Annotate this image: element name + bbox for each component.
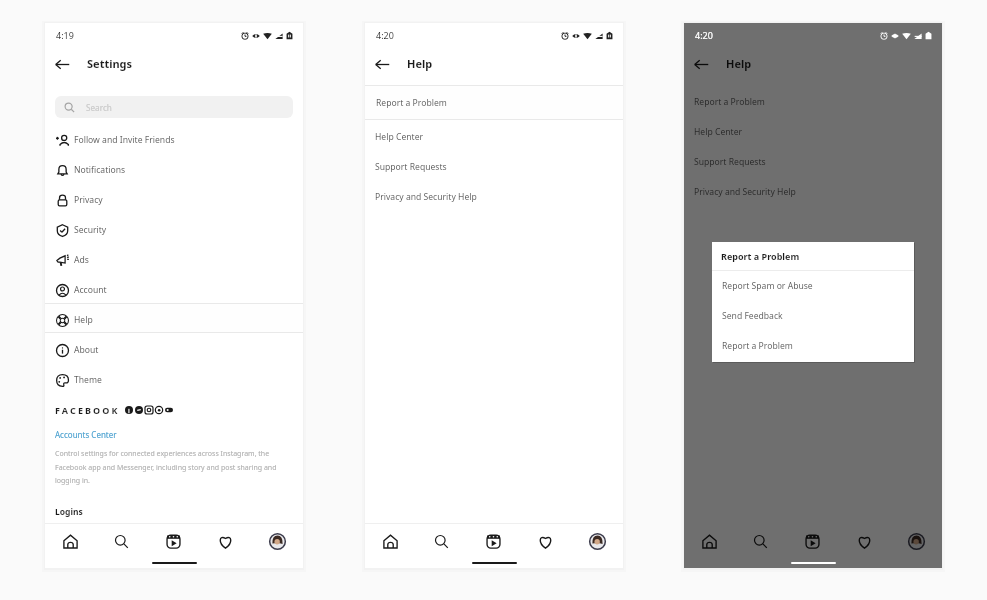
staticText: Send Feedback [722, 310, 783, 322]
staticText: Accounts Center [55, 429, 117, 440]
staticText: Privacy and Security Help [375, 191, 477, 203]
button[interactable]: Profile [890, 529, 942, 553]
button[interactable]: Report Spam or Abuse [712, 271, 914, 301]
button[interactable]: Report a Problem [365, 85, 623, 120]
button[interactable]: Privacy and Security Help [365, 182, 623, 212]
button[interactable]: Reels [147, 529, 199, 553]
button[interactable]: Reels [786, 529, 838, 553]
staticText: Report a Problem [722, 340, 793, 352]
button[interactable]: Search [55, 96, 293, 118]
staticText: Support Requests [375, 161, 447, 173]
button[interactable]: Help Center [365, 122, 623, 152]
button[interactable]: Ads [45, 245, 303, 275]
button[interactable]: Back [371, 53, 393, 75]
staticText: Report a Problem [721, 250, 800, 262]
staticText: FACEBOOK [55, 404, 120, 416]
button[interactable]: About [45, 335, 303, 365]
button[interactable]: Privacy [45, 185, 303, 215]
staticText: Help Center [375, 131, 424, 143]
button[interactable]: Send Feedback [712, 301, 914, 331]
staticText: 4:20 [376, 29, 394, 41]
staticText: Follow and Invite Friends [74, 134, 175, 146]
staticText: Security [74, 224, 107, 236]
button[interactable]: Notifications [45, 155, 303, 185]
button[interactable]: Profile [251, 529, 303, 553]
button[interactable]: Privacy and Security Help [684, 177, 942, 207]
staticText: Help [407, 56, 433, 71]
staticText: Privacy [74, 194, 103, 206]
staticText: Logins [55, 506, 83, 518]
staticText: Theme [74, 374, 102, 386]
button[interactable]: Help [45, 305, 303, 335]
button[interactable]: Search [735, 529, 786, 553]
staticText: Settings [87, 56, 133, 71]
button[interactable]: Home [45, 529, 96, 553]
button[interactable]: Support Requests [684, 147, 942, 177]
staticText: Report a Problem [376, 97, 447, 109]
button[interactable]: Home [684, 529, 735, 553]
button[interactable]: Follow and Invite Friends [45, 125, 303, 155]
staticText: Report a Problem [694, 96, 765, 108]
button[interactable]: Support Requests [365, 152, 623, 182]
button[interactable]: Security [45, 215, 303, 245]
button[interactable]: Search [416, 529, 467, 553]
button[interactable]: Logins [55, 506, 83, 518]
staticText: Help [74, 314, 93, 326]
button[interactable]: Report a Problem [712, 331, 914, 361]
staticText: Help Center [694, 126, 743, 138]
button[interactable]: Back [51, 53, 73, 75]
button[interactable]: Likes [838, 529, 890, 553]
staticText: Support Requests [694, 156, 766, 168]
staticText: Notifications [74, 164, 126, 176]
button[interactable]: Back [690, 53, 712, 75]
staticText: Privacy and Security Help [694, 186, 796, 198]
button[interactable]: Likes [519, 529, 571, 553]
button[interactable]: Profile [571, 529, 623, 553]
staticText: Search [86, 102, 112, 113]
staticText: Ads [74, 254, 89, 266]
button[interactable]: Theme [45, 365, 303, 395]
button[interactable]: Reels [467, 529, 519, 553]
button[interactable]: Help Center [684, 117, 942, 147]
button[interactable]: Accounts Center [55, 429, 117, 440]
staticText: About [74, 344, 99, 356]
button[interactable]: Report a Problem [684, 87, 942, 117]
staticText: Account [74, 284, 107, 296]
staticText: 4:19 [56, 29, 74, 41]
staticText: 4:20 [695, 29, 713, 41]
button[interactable]: Account [45, 275, 303, 305]
staticText: Control settings for connected experienc… [55, 449, 290, 485]
button[interactable]: Search [96, 529, 147, 553]
staticText: Help [726, 56, 752, 71]
button[interactable]: Likes [199, 529, 251, 553]
button[interactable]: Home [365, 529, 416, 553]
staticText: Report Spam or Abuse [722, 280, 813, 292]
